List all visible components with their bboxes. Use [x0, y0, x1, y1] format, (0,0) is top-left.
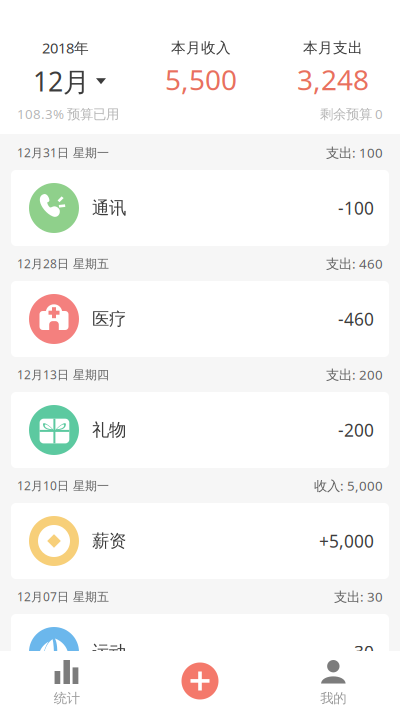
staticText: 12月10日 星期一	[17, 477, 109, 493]
button[interactable]: 礼物	[11, 392, 389, 468]
button[interactable]: 2018年	[0, 38, 146, 99]
button[interactable]: 医疗	[11, 281, 389, 357]
staticText: 礼物	[92, 419, 126, 441]
staticText: 剩余预算 0	[320, 105, 383, 123]
staticText: -30	[348, 640, 374, 663]
staticText: +5,000	[319, 529, 374, 552]
staticText: 108.3% 预算已用	[17, 105, 119, 123]
staticText: 本月收入	[171, 39, 231, 57]
staticText: 我的	[320, 690, 346, 706]
staticText: 支出: 88	[334, 699, 383, 711]
button[interactable]: 运动	[11, 614, 389, 690]
staticText: 支出: 200	[326, 366, 383, 383]
staticText: 收入: 5,000	[314, 477, 383, 494]
staticText: -200	[338, 418, 374, 441]
staticText: -460	[338, 307, 374, 330]
staticText: 支出: 100	[326, 144, 383, 161]
staticText: 5,500	[165, 61, 237, 98]
button[interactable]: 薪资	[11, 503, 389, 579]
staticText: 3,248	[297, 61, 369, 98]
staticText: 12月28日 星期五	[17, 255, 109, 271]
staticText: 12月31日 星期一	[17, 144, 109, 160]
staticText: 12月	[33, 63, 90, 99]
staticText: 2018年	[42, 38, 89, 57]
staticText: 支出: 30	[334, 588, 383, 605]
staticText: 本月支出	[303, 39, 363, 57]
staticText: -100	[338, 196, 374, 219]
button[interactable]: 通讯	[11, 170, 389, 246]
staticText: 12月05日 星期三	[17, 699, 109, 711]
staticText: 统计	[54, 690, 80, 706]
button[interactable]: 我的	[267, 651, 400, 711]
staticText: 12月13日 星期四	[17, 366, 109, 382]
staticText: 薪资	[92, 530, 126, 552]
staticText: 运动	[92, 641, 126, 663]
staticText: 支出: 460	[326, 255, 383, 272]
button[interactable]: 统计	[0, 651, 133, 711]
button[interactable]: Add	[133, 651, 267, 711]
staticText: 通讯	[92, 197, 126, 219]
staticText: 12月07日 星期五	[17, 588, 109, 604]
staticText: 医疗	[92, 308, 126, 330]
